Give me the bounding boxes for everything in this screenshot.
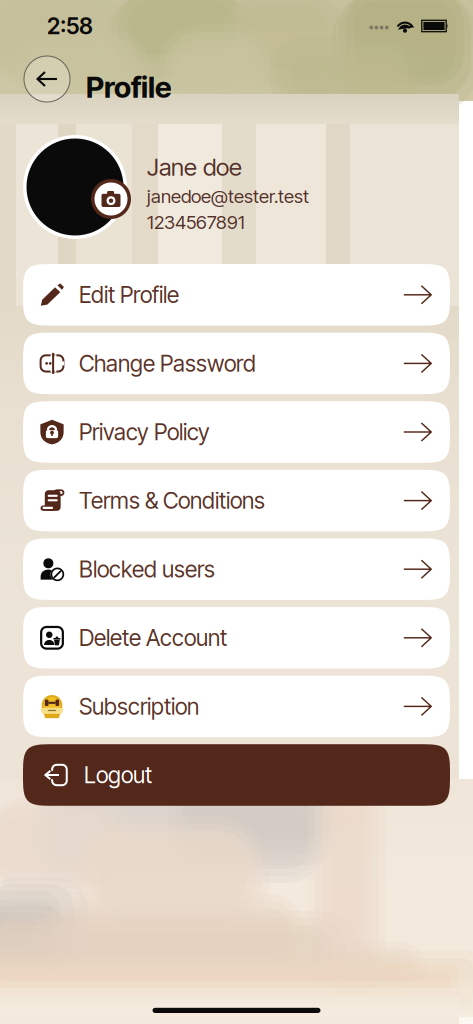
staticText: Privacy Policy [79,419,210,445]
staticText: Logout [84,762,152,788]
button[interactable]: Logout [23,744,450,806]
staticText: Terms & Conditions [79,487,265,514]
button[interactable]: Terms & Conditions [23,470,450,531]
button[interactable]: Subscription [23,676,450,737]
staticText: 2:58 [47,13,93,39]
button[interactable]: Change Password [23,333,450,394]
button[interactable]: Back [24,56,70,102]
button[interactable]: Blocked users [23,538,450,600]
staticText: Edit Profile [79,281,179,308]
staticText: Subscription [79,693,199,720]
staticText: 1234567891 [147,211,245,233]
staticText: Blocked users [79,556,215,582]
button[interactable]: Delete Account [23,607,450,669]
staticText: janedoe@tester.test [147,185,309,207]
staticText: Profile [86,70,172,104]
staticText: Change Password [79,350,256,377]
button[interactable]: Privacy Policy [23,401,450,463]
staticText: Delete Account [79,624,227,651]
staticText: Jane doe [147,153,242,181]
button[interactable]: Edit Profile [23,264,450,326]
